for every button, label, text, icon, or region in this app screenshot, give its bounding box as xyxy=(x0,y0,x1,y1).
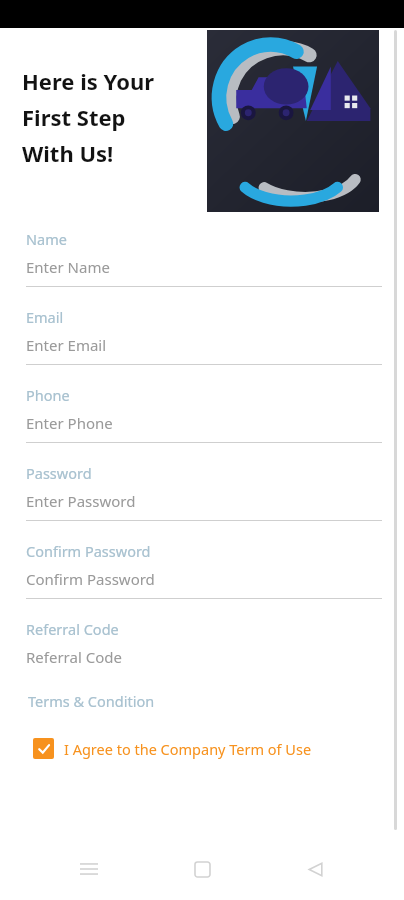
button[interactable]: Home xyxy=(178,845,226,893)
staticText: Name xyxy=(26,229,67,249)
staticText: Here is Your xyxy=(22,66,155,96)
staticText: Referral Code xyxy=(26,647,122,667)
staticText: With Us! xyxy=(22,138,114,168)
button[interactable]: I Agree to the Company Term of Use xyxy=(33,738,312,759)
staticText: Enter Phone xyxy=(26,413,113,433)
staticText: I Agree to the Company Term of Use xyxy=(64,739,312,759)
staticText: Enter Name xyxy=(26,257,110,277)
button[interactable]: Name xyxy=(0,229,404,287)
button[interactable]: Terms & Condition xyxy=(28,691,155,711)
button[interactable]: Confirm Password xyxy=(0,541,404,599)
button[interactable]: Referral Code xyxy=(0,619,404,677)
staticText: Confirm Password xyxy=(26,541,151,561)
staticText: Confirm Password xyxy=(26,569,155,589)
staticText: First Step xyxy=(22,102,126,132)
staticText: Enter Password xyxy=(26,491,136,511)
button[interactable]: Email xyxy=(0,307,404,365)
staticText: Referral Code xyxy=(26,619,119,639)
button[interactable]: Phone xyxy=(0,385,404,443)
button[interactable]: Back xyxy=(291,845,339,893)
button[interactable]: Recent apps xyxy=(65,845,113,893)
staticText: Enter Email xyxy=(26,335,107,355)
button[interactable]: Password xyxy=(0,463,404,521)
staticText: Password xyxy=(26,463,92,483)
staticText: Phone xyxy=(26,385,70,405)
staticText: Email xyxy=(26,307,64,327)
